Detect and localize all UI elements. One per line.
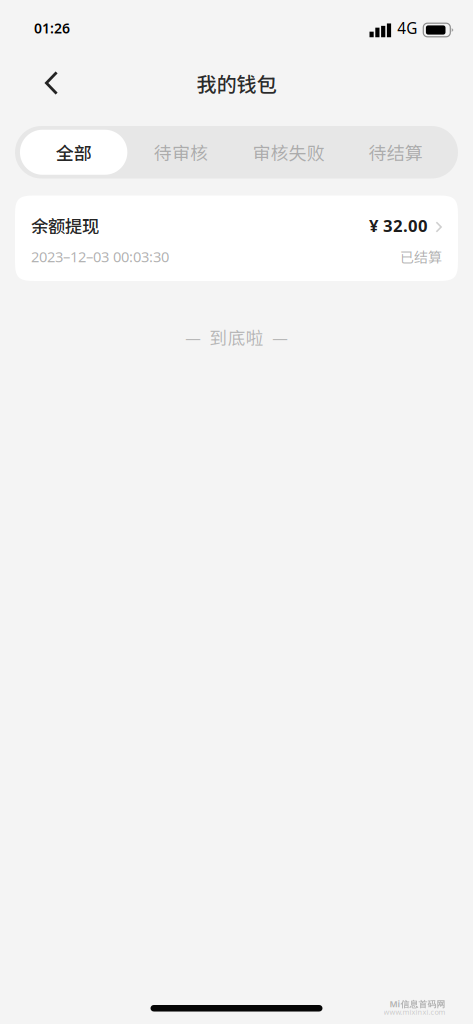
staticText: — — [272, 324, 288, 350]
staticText: 2023–12–03 00:03:30 — [31, 246, 169, 266]
staticText: 01:26 — [34, 18, 70, 38]
staticText: www.mixinxi.com — [383, 1007, 445, 1017]
staticText: — — [185, 324, 201, 350]
staticText: 余额提现 — [31, 213, 99, 238]
staticText: 待审核 — [154, 139, 208, 165]
button[interactable]: 待结算 — [342, 130, 450, 175]
staticText: ¥ 32.00 — [369, 214, 428, 237]
staticText: 已结算 — [400, 246, 442, 267]
staticText: 我的钱包 — [196, 68, 276, 97]
staticText: 全部 — [56, 139, 92, 165]
staticText: 到底啦 — [209, 324, 263, 350]
button[interactable]: 全部 — [20, 130, 127, 175]
staticText: 审核失败 — [252, 139, 324, 165]
staticText: Mi信息首码网 — [389, 998, 445, 1010]
button[interactable]: 待审核 — [127, 130, 235, 175]
button[interactable]: Back — [0, 60, 78, 106]
staticText: 待结算 — [369, 139, 423, 165]
button[interactable]: 审核失败 — [235, 130, 342, 175]
staticText: 4G — [397, 18, 417, 38]
button[interactable]: 余额提现 — [15, 195, 458, 281]
